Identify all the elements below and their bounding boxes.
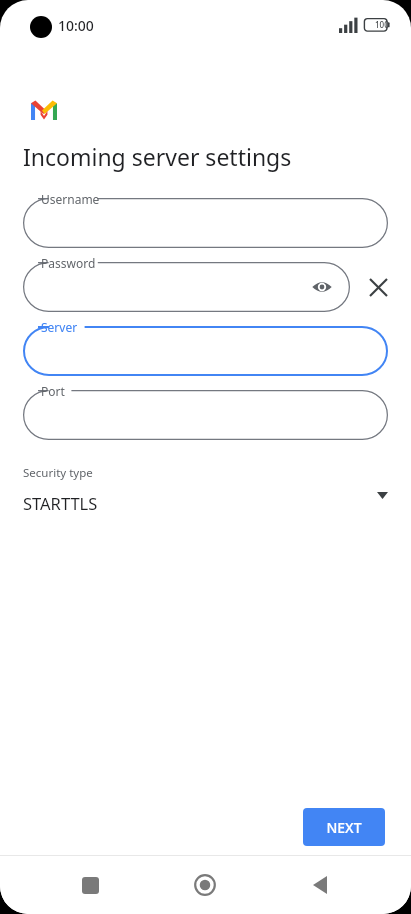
staticText: NEXT <box>326 818 362 837</box>
staticText: Username <box>41 191 100 207</box>
button[interactable]: Home <box>181 861 229 909</box>
staticText: Security type <box>23 465 93 481</box>
button[interactable]: Password <box>23 262 350 312</box>
button[interactable]: Recent apps <box>66 861 114 909</box>
button[interactable]: Port <box>23 390 388 440</box>
button[interactable]: Show password <box>308 273 336 301</box>
button[interactable]: Username <box>23 198 388 248</box>
staticText: Port <box>41 383 65 399</box>
button[interactable]: Server <box>23 326 388 376</box>
button[interactable]: Clear password <box>360 269 396 305</box>
staticText: Server <box>41 319 78 335</box>
staticText: Incoming server settings <box>23 141 292 172</box>
staticText: STARTTLS <box>23 492 98 514</box>
button[interactable]: NEXT <box>303 808 385 846</box>
staticText: Password <box>41 255 96 271</box>
button[interactable]: Back <box>296 861 344 909</box>
button[interactable]: Security type <box>0 463 411 520</box>
staticText: 100 <box>375 19 389 30</box>
staticText: 10:00 <box>58 16 94 35</box>
